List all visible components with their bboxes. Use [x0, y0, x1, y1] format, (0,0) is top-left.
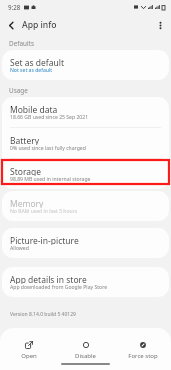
button[interactable]: App details in store — [2, 267, 169, 297]
staticText: Open — [21, 352, 37, 360]
staticText: 18.66 GB used since 25 Sep 2021 — [10, 114, 89, 121]
button[interactable]: Set as default — [2, 50, 169, 80]
staticText: Mobile data — [10, 104, 58, 114]
staticText: App downloaded from Google Play Store — [10, 284, 108, 291]
staticText: Battery — [10, 135, 40, 145]
staticText: 98.89 MB used in internal storage — [10, 176, 91, 183]
button[interactable]: Picture-in-picture — [2, 228, 169, 258]
button[interactable]: Storage — [2, 159, 169, 189]
staticText: Set as default — [10, 57, 65, 67]
staticText: Version 8.14.0 build 5 40129 — [10, 311, 76, 318]
staticText: Picture-in-picture — [10, 235, 79, 245]
staticText: Memory — [10, 198, 44, 208]
staticText: App details in store — [10, 274, 87, 284]
button[interactable]: Mobile data — [2, 97, 169, 127]
staticText: No RAM used in last 3 hours — [10, 208, 78, 215]
button[interactable]: Force stop — [114, 328, 171, 360]
button[interactable]: Memory — [2, 191, 169, 221]
staticText: 9:28 — [8, 3, 21, 11]
button[interactable]: Navigate up — [0, 14, 22, 36]
button[interactable]: More options — [149, 14, 171, 36]
staticText: 0% used since last fully charged — [10, 145, 86, 152]
staticText: Defaults — [9, 39, 35, 48]
button[interactable]: Battery — [2, 128, 169, 158]
button[interactable]: Disable — [57, 328, 114, 360]
staticText: Allowed — [10, 245, 29, 252]
staticText: Storage — [10, 166, 42, 176]
staticText: Usage — [9, 86, 28, 95]
staticText: Force stop — [128, 352, 158, 360]
staticText: Disable — [75, 352, 96, 360]
button[interactable]: Open — [0, 328, 57, 360]
staticText: App info — [22, 19, 57, 31]
staticText: Not set as default — [10, 67, 53, 74]
